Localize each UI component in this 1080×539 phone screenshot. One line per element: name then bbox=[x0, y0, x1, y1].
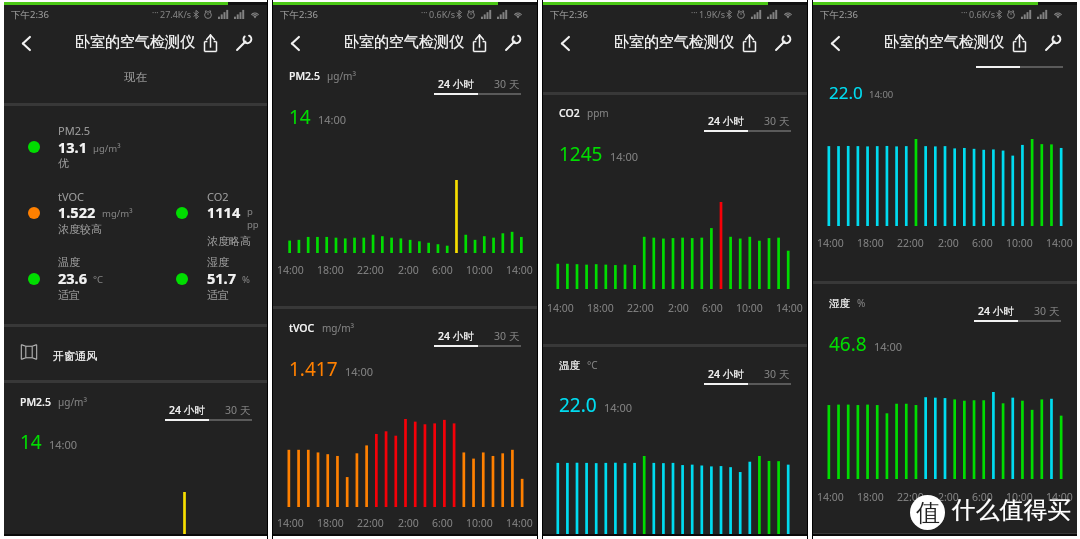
staticText: 0.6K/s bbox=[969, 8, 995, 20]
staticText: 24 小时 bbox=[438, 329, 474, 343]
button[interactable]: 30 天 bbox=[494, 329, 520, 343]
staticText: 温度 bbox=[559, 359, 580, 372]
staticText: 适宜 bbox=[58, 288, 80, 302]
button[interactable] bbox=[21, 191, 141, 243]
staticText: 22.0 bbox=[559, 392, 597, 418]
button[interactable]: 24 小时 bbox=[438, 77, 474, 91]
staticText: PM2.5 bbox=[20, 395, 51, 409]
staticText: 13.1 bbox=[58, 137, 87, 157]
staticText: 卧室的空气检测仪 bbox=[344, 33, 464, 52]
staticText: 1.522 bbox=[58, 202, 96, 222]
staticText: 51.7 bbox=[207, 268, 236, 288]
staticText: 18:00 bbox=[587, 301, 614, 315]
staticText: 10:00 bbox=[1006, 236, 1033, 250]
button[interactable]: 24 小时 bbox=[169, 403, 205, 417]
button[interactable]: Share bbox=[1007, 27, 1031, 59]
staticText: 22.0 bbox=[829, 81, 863, 104]
staticText: 14:00 bbox=[604, 400, 633, 415]
staticText: 14:00 bbox=[277, 516, 304, 530]
button[interactable]: Settings bbox=[499, 27, 526, 59]
staticText: 14:00 bbox=[277, 263, 304, 277]
button[interactable]: 30 天 bbox=[494, 77, 520, 91]
button[interactable]: 24 小时 bbox=[708, 114, 744, 128]
button[interactable]: Share bbox=[467, 27, 491, 59]
button[interactable]: 24 小时 bbox=[438, 329, 474, 343]
staticText: 优 bbox=[58, 156, 69, 170]
staticText: 14:00 bbox=[869, 88, 894, 101]
staticText: 14:00 bbox=[506, 516, 533, 530]
staticText: 适宜 bbox=[207, 288, 229, 302]
button[interactable]: Settings bbox=[769, 27, 796, 59]
staticText: °C bbox=[93, 273, 104, 286]
button[interactable]: Settings bbox=[1039, 27, 1066, 59]
button[interactable]: 24 小时 bbox=[978, 304, 1014, 318]
staticText: 24 小时 bbox=[978, 304, 1014, 318]
staticText: 23.6 bbox=[58, 268, 87, 288]
staticText: PM2.5 bbox=[58, 123, 91, 138]
staticText: 22:00 bbox=[357, 263, 384, 277]
staticText: 14:00 bbox=[817, 490, 844, 504]
button[interactable]: Back bbox=[11, 27, 42, 59]
staticText: tVOC bbox=[58, 189, 85, 204]
button[interactable]: 30 天 bbox=[1034, 304, 1060, 318]
staticText: 浓度略高 bbox=[207, 234, 251, 248]
staticText: 下午2:36 bbox=[11, 8, 49, 21]
button[interactable] bbox=[21, 257, 141, 309]
staticText: 24 小时 bbox=[708, 367, 744, 381]
staticText: ··· bbox=[961, 7, 968, 18]
staticText: 2:00 bbox=[398, 516, 419, 530]
staticText: 下午2:36 bbox=[550, 8, 588, 21]
staticText: 14:00 bbox=[874, 339, 903, 354]
staticText: 14:00 bbox=[345, 364, 374, 379]
staticText: 14:00 bbox=[318, 112, 347, 127]
staticText: 0.6K/s bbox=[429, 8, 455, 20]
button[interactable] bbox=[170, 191, 290, 243]
button[interactable]: 30 天 bbox=[764, 367, 790, 381]
staticText: 22:00 bbox=[897, 236, 924, 250]
staticText: ··· bbox=[421, 7, 428, 18]
staticText: 18:00 bbox=[317, 263, 344, 277]
staticText: 现在 bbox=[124, 70, 147, 84]
button[interactable]: Share bbox=[198, 27, 222, 59]
staticText: 10:00 bbox=[466, 263, 493, 277]
staticText: 14:00 bbox=[49, 437, 78, 452]
button[interactable] bbox=[4, 327, 267, 383]
staticText: ··· bbox=[152, 7, 159, 18]
button[interactable]: Share bbox=[737, 27, 761, 59]
staticText: 30 天 bbox=[1034, 304, 1060, 318]
staticText: ··· bbox=[691, 7, 698, 18]
staticText: 14:00 bbox=[547, 301, 574, 315]
staticText: mg/m³ bbox=[102, 207, 133, 220]
button[interactable]: Back bbox=[280, 27, 311, 59]
staticText: PM2.5 bbox=[289, 69, 320, 83]
button[interactable]: Back bbox=[820, 27, 851, 59]
button[interactable]: 30 天 bbox=[764, 114, 790, 128]
staticText: 6:00 bbox=[702, 301, 723, 315]
staticText: 46.8 bbox=[829, 331, 867, 357]
staticText: 卧室的空气检测仪 bbox=[614, 33, 734, 52]
staticText: 2:00 bbox=[938, 490, 959, 504]
staticText: 22:00 bbox=[627, 301, 654, 315]
button[interactable]: Settings bbox=[230, 27, 257, 59]
button[interactable]: 24 小时 bbox=[708, 367, 744, 381]
button[interactable] bbox=[170, 257, 290, 309]
staticText: 开窗通风 bbox=[53, 349, 97, 363]
staticText: 18:00 bbox=[857, 490, 884, 504]
staticText: 30 天 bbox=[494, 329, 520, 343]
button[interactable] bbox=[21, 125, 141, 177]
button[interactable]: 30 天 bbox=[225, 403, 251, 417]
staticText: µg/m³ bbox=[327, 69, 356, 83]
staticText: 6:00 bbox=[432, 263, 453, 277]
staticText: 6:00 bbox=[432, 516, 453, 530]
staticText: 14 bbox=[20, 429, 42, 455]
staticText: 10:00 bbox=[736, 301, 763, 315]
staticText: 18:00 bbox=[857, 236, 884, 250]
staticText: 14:00 bbox=[1046, 490, 1073, 504]
staticText: 24 小时 bbox=[169, 403, 205, 417]
staticText: 10:00 bbox=[1006, 490, 1033, 504]
staticText: 6:00 bbox=[972, 490, 993, 504]
staticText: 22:00 bbox=[357, 516, 384, 530]
staticText: 27.4K/s bbox=[160, 8, 192, 20]
button[interactable]: Back bbox=[550, 27, 581, 59]
staticText: 14 bbox=[289, 104, 311, 130]
